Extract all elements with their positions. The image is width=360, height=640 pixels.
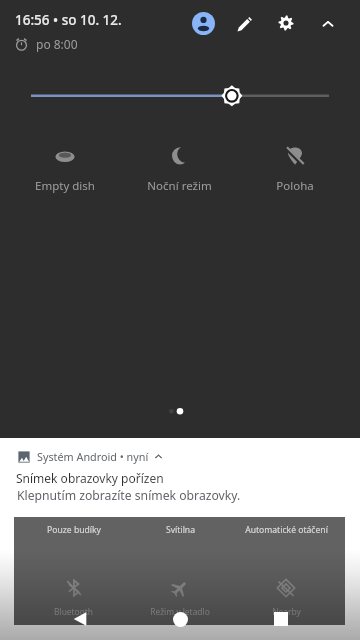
button[interactable]: Account xyxy=(189,9,217,37)
staticText: Systém Android • nyní xyxy=(37,449,149,464)
staticText: Automatické otáčení xyxy=(245,524,328,536)
button[interactable]: Empty dish xyxy=(8,135,122,205)
staticText: 16:56 • so 10. 12. xyxy=(15,11,122,29)
staticText: Noční režim xyxy=(147,178,212,194)
staticText: Svítilna xyxy=(166,524,195,536)
button[interactable]: Poloha xyxy=(237,135,352,205)
button[interactable]: Home xyxy=(166,606,194,632)
staticText: Empty dish xyxy=(35,178,95,194)
button[interactable]: Bluetooth xyxy=(20,579,127,617)
staticText: po 8:00 xyxy=(36,36,78,52)
staticText: Pouze budíky xyxy=(47,524,101,536)
button[interactable]: Brightness xyxy=(0,62,360,100)
staticText: Snímek obrazovky pořízen xyxy=(16,470,164,486)
staticText: Nearby xyxy=(272,606,301,617)
staticText: Poloha xyxy=(276,178,314,194)
button[interactable]: Systém Android • nyní xyxy=(17,449,163,464)
button[interactable]: Režim v letadlo xyxy=(127,579,233,617)
button[interactable]: Noční režim xyxy=(122,135,237,205)
button[interactable]: Nearby xyxy=(233,579,339,617)
staticText: Klepnutím zobrazíte snímek obrazovky. xyxy=(17,487,241,504)
button[interactable]: Collapse xyxy=(314,10,342,38)
button[interactable]: Edit xyxy=(230,10,258,38)
staticText: Režim v letadlo xyxy=(150,606,210,617)
button[interactable]: Back xyxy=(66,606,94,632)
button[interactable]: Recent apps xyxy=(267,606,295,632)
staticText: Bluetooth xyxy=(54,606,93,617)
button[interactable]: Settings xyxy=(272,9,300,37)
